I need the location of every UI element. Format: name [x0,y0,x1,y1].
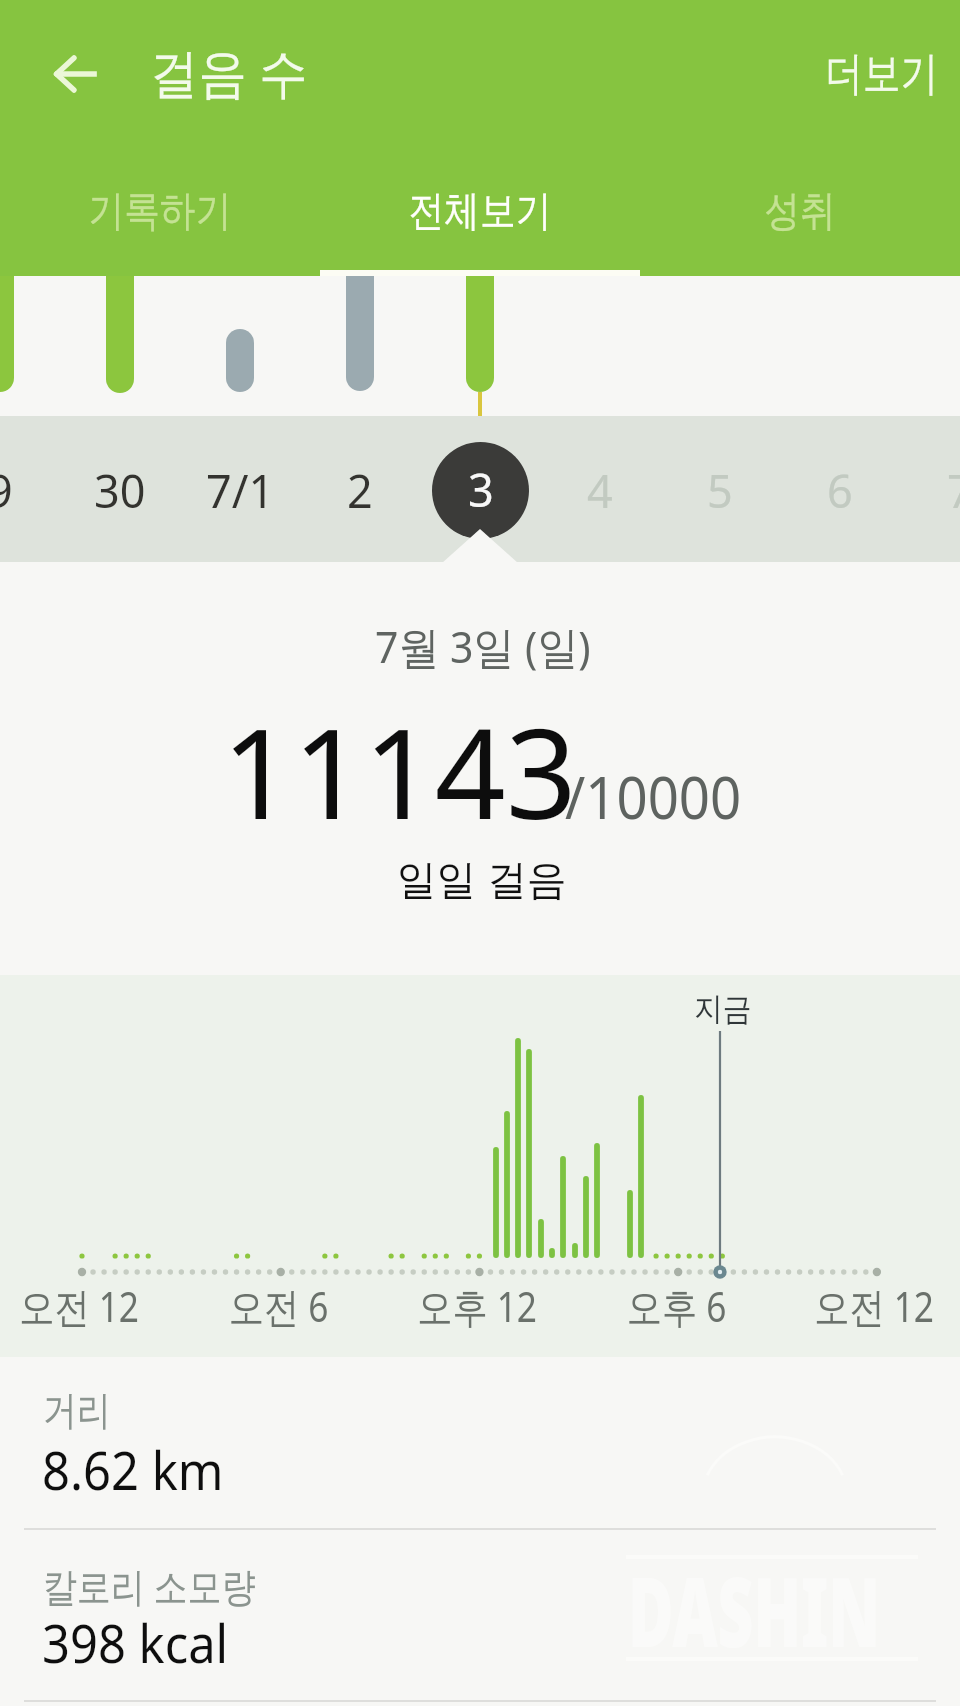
staticText: 4 [587,460,613,521]
staticText: 오후 6 [626,1278,727,1334]
button[interactable]: 거리 [0,1357,960,1528]
button[interactable]: Back [28,27,122,121]
staticText: 8.62 km [42,1434,224,1505]
staticText: 지금 [694,989,752,1029]
staticText: 7 [947,460,960,521]
button[interactable]: 7/1 [180,416,300,562]
button[interactable]: 5 [660,416,780,562]
button[interactable]: 6 [780,416,900,562]
staticText: 성취 [764,185,836,238]
button[interactable]: 성취 [640,150,960,277]
button[interactable]: 전체보기 [320,150,640,277]
button[interactable]: 기록하기 [0,150,320,277]
staticText: 2 [347,460,373,521]
staticText: 거리 [43,1385,111,1435]
staticText: 기록하기 [89,185,231,238]
staticText: 398 kcal [42,1607,229,1678]
staticText: 오전 12 [814,1278,934,1334]
button[interactable]: More [795,26,960,124]
button[interactable]: 9 [0,416,60,562]
staticText: 9 [0,460,13,521]
button[interactable]: 30 [60,416,180,562]
staticText: 7/1 [206,460,275,521]
button[interactable]: 2 [300,416,420,562]
button[interactable]: 4 [540,416,660,562]
staticText: 11143 [222,686,577,855]
button[interactable]: 칼로리 소모량 [0,1530,960,1700]
staticText: 3 [468,459,494,520]
staticText: 일일 걸음 [397,850,567,906]
button[interactable]: 3 [420,416,540,562]
staticText: /10000 [565,757,742,836]
staticText: 더보기 [825,45,938,103]
staticText: 칼로리 소모량 [43,1558,256,1613]
staticText: 오전 6 [228,1278,329,1334]
staticText: 7월 3일 (일) [375,616,591,676]
staticText: 걸음 수 [150,35,307,107]
staticText: 30 [94,460,146,521]
staticText: 5 [707,460,733,521]
staticText: 오후 12 [417,1278,537,1334]
staticText: 6 [827,460,853,521]
staticText: 오전 12 [19,1278,139,1334]
staticText: 전체보기 [409,185,551,238]
